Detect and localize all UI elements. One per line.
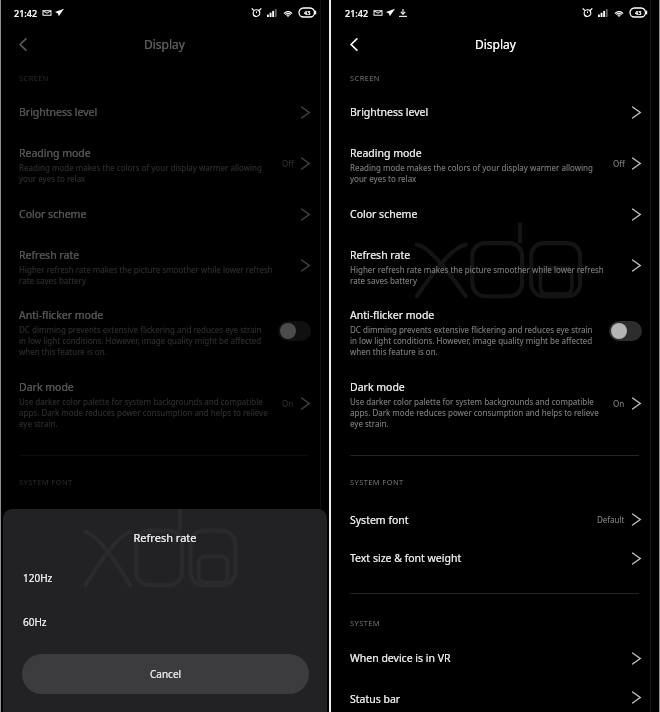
staticText: Off	[282, 158, 294, 169]
button[interactable]: Reading mode	[331, 129, 660, 190]
staticText: Anti-flicker mode	[350, 308, 435, 322]
button[interactable]: Brightness level	[0, 88, 329, 129]
staticText: Dark mode	[350, 380, 405, 394]
staticText: Reading mode	[350, 146, 422, 160]
staticText: System font	[350, 513, 409, 527]
staticText: Display	[475, 36, 516, 52]
staticText: Status bar	[350, 692, 401, 706]
staticText: On	[613, 398, 625, 409]
staticText: SYSTEM	[350, 618, 381, 628]
staticText: DC dimming prevents extensive flickering…	[350, 324, 598, 357]
button[interactable]: System font	[0, 496, 329, 534]
staticText: Off	[613, 158, 625, 169]
button[interactable]: Dark mode	[0, 363, 329, 435]
staticText: Refresh rate	[19, 248, 80, 262]
button[interactable]: Brightness level	[331, 88, 660, 129]
staticText: SYSTEM FONT	[350, 477, 404, 487]
button[interactable]: When device is in VR	[331, 634, 660, 675]
staticText: Use darker color palette for system back…	[19, 396, 281, 429]
staticText: Refresh rate	[3, 530, 327, 545]
button[interactable]: System font	[331, 496, 660, 534]
staticText: Use darker color palette for system back…	[350, 396, 612, 429]
staticText: 43	[304, 9, 311, 16]
staticText: Brightness level	[19, 105, 98, 119]
button[interactable]: Cancel	[22, 654, 309, 694]
staticText: When device is in VR	[19, 651, 120, 665]
staticText: SYSTEM FONT	[19, 477, 73, 487]
staticText: Color scheme	[350, 207, 418, 221]
staticText: Brightness level	[350, 105, 429, 119]
staticText: Default	[597, 514, 625, 525]
staticText: Display	[144, 36, 185, 52]
staticText: 60Hz	[23, 615, 47, 629]
button[interactable]: Text size & font weight	[331, 534, 660, 575]
button[interactable]: Status bar	[331, 675, 660, 712]
button[interactable]: Back	[338, 28, 370, 60]
staticText: 120Hz	[23, 571, 53, 585]
staticText: Higher refresh rate makes the picture sm…	[19, 264, 281, 286]
button[interactable]: 120Hz	[3, 560, 327, 596]
staticText: SCREEN	[19, 73, 49, 83]
button[interactable]: When device is in VR	[0, 634, 329, 675]
staticText: 43	[635, 9, 642, 16]
button[interactable]: Text size & font weight	[0, 534, 329, 575]
button[interactable]: Refresh rate	[331, 231, 660, 291]
button[interactable]: Status bar	[0, 675, 329, 712]
staticText: Color scheme	[19, 207, 87, 221]
staticText: Reading mode makes the colors of your di…	[350, 162, 612, 184]
staticText: Anti-flicker mode	[19, 308, 104, 322]
button[interactable]: Refresh rate	[0, 231, 329, 291]
staticText: Refresh rate	[350, 248, 411, 262]
staticText: On	[282, 398, 294, 409]
staticText: When device is in VR	[350, 651, 451, 665]
staticText: Dark mode	[19, 380, 74, 394]
staticText: Status bar	[19, 692, 70, 706]
button[interactable]: Anti-flicker mode toggle	[609, 321, 642, 341]
button[interactable]: Reading mode	[0, 129, 329, 190]
staticText: SYSTEM	[19, 618, 50, 628]
button[interactable]: Anti-flicker mode toggle	[278, 321, 311, 341]
staticText: 21:42	[14, 7, 38, 19]
button[interactable]: Color scheme	[0, 190, 329, 231]
staticText: Reading mode makes the colors of your di…	[19, 162, 281, 184]
button[interactable]: Anti-flicker mode	[331, 291, 660, 363]
staticText: Reading mode	[19, 146, 91, 160]
staticText: 21:42	[345, 7, 369, 19]
staticText: SCREEN	[350, 73, 380, 83]
button[interactable]: Anti-flicker mode	[0, 291, 329, 363]
button[interactable]: Back	[7, 28, 39, 60]
button[interactable]: 60Hz	[3, 604, 327, 640]
staticText: Text size & font weight	[350, 551, 462, 565]
staticText: DC dimming prevents extensive flickering…	[19, 324, 267, 357]
staticText: Cancel	[150, 667, 182, 681]
button[interactable]: Dark mode	[331, 363, 660, 435]
button[interactable]: Color scheme	[331, 190, 660, 231]
staticText: Higher refresh rate makes the picture sm…	[350, 264, 612, 286]
